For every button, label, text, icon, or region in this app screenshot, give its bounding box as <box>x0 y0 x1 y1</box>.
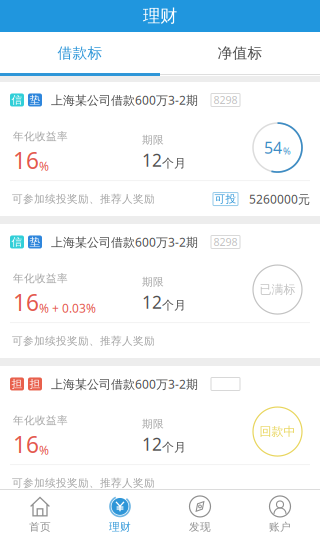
staticText: 12 <box>142 433 162 456</box>
staticText: 回款中 <box>259 424 295 439</box>
button[interactable]: 借款标 <box>0 32 160 73</box>
button[interactable]: 发现 <box>160 487 240 533</box>
staticText: 上海某公司借款600万3-2期 <box>51 92 198 108</box>
button[interactable]: 净值标 <box>160 32 320 73</box>
staticText: 理财 <box>109 520 131 533</box>
staticText: 信 <box>11 235 22 248</box>
button[interactable]: 首页 <box>0 487 80 533</box>
staticText: 年化收益率 <box>13 272 68 285</box>
staticText: 担 <box>11 377 22 390</box>
staticText: 账户 <box>269 520 291 533</box>
staticText: 首页 <box>29 520 51 533</box>
staticText: 个月 <box>162 156 186 171</box>
staticText: 可参加续投奖励、推荐人奖励 <box>12 192 155 206</box>
staticText: % <box>39 300 49 316</box>
staticText: % <box>283 145 291 157</box>
staticText: 发现 <box>189 520 211 533</box>
staticText: 可参加续投奖励、推荐人奖励 <box>12 334 155 348</box>
staticText: 上海某公司借款600万3-2期 <box>51 376 198 392</box>
staticText: % <box>39 158 49 174</box>
staticText: 上海某公司借款600万3-2期 <box>51 234 198 250</box>
staticText: 16 <box>13 429 39 459</box>
staticText: 16 <box>13 287 39 317</box>
staticText: 期限 <box>142 133 164 147</box>
staticText: 已满标 <box>259 282 295 297</box>
staticText: 年化收益率 <box>13 130 68 143</box>
staticText: 理财 <box>143 5 177 27</box>
button[interactable]: 理财 <box>80 487 160 533</box>
staticText: 期限 <box>142 417 164 431</box>
staticText: 垫 <box>29 93 40 106</box>
staticText: 年化收益率 <box>13 414 68 427</box>
staticText: 可投 <box>214 192 236 206</box>
staticText: 个月 <box>162 440 186 455</box>
staticText: 信 <box>11 93 22 106</box>
button[interactable]: 信 <box>0 224 320 358</box>
staticText: 可参加续投奖励、推荐人奖励 <box>12 476 155 490</box>
staticText: 8298 <box>213 93 237 107</box>
staticText: 12 <box>142 149 162 172</box>
button[interactable]: 担 <box>0 366 320 500</box>
staticText: 个月 <box>162 298 186 313</box>
staticText: 54 <box>264 137 282 158</box>
staticText: 借款标 <box>57 44 102 62</box>
button[interactable]: 信 <box>0 82 320 216</box>
staticText: 8298 <box>213 235 237 249</box>
staticText: + 0.03% <box>49 300 96 316</box>
staticText: % <box>39 442 49 458</box>
staticText: 16 <box>13 145 39 175</box>
staticText: 12 <box>142 291 162 314</box>
staticText: 净值标 <box>217 44 262 62</box>
staticText: 5260000元 <box>249 191 310 207</box>
button[interactable]: 账户 <box>240 487 320 533</box>
staticText: 担 <box>29 377 40 390</box>
staticText: 期限 <box>142 275 164 289</box>
staticText: 垫 <box>29 235 40 248</box>
